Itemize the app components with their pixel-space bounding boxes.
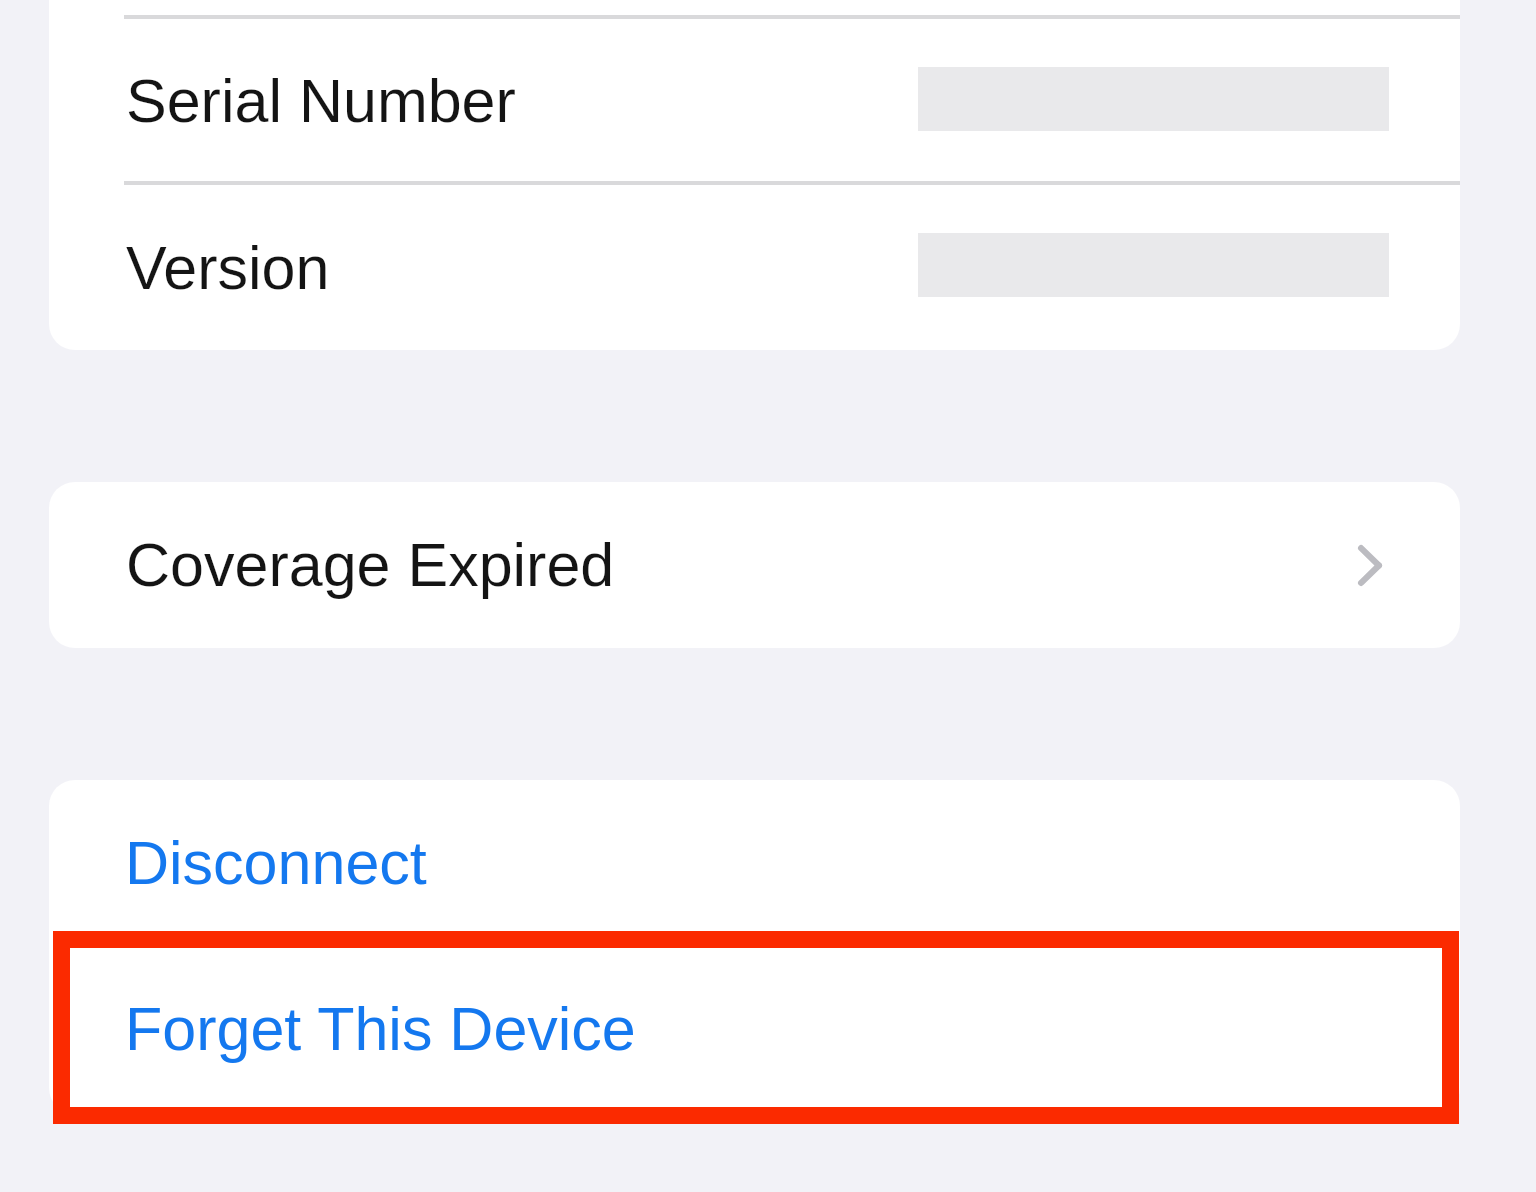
staticText: Disconnect bbox=[125, 829, 427, 897]
button[interactable]: Serial Number bbox=[49, 18, 1460, 184]
other: Coverage details bbox=[1358, 545, 1382, 586]
button[interactable]: Forget This Device bbox=[49, 946, 1460, 1112]
staticText: Version bbox=[126, 234, 330, 302]
staticText: Forget This Device bbox=[125, 995, 636, 1063]
staticText: Coverage Expired bbox=[126, 531, 615, 599]
button[interactable]: Coverage Expired bbox=[49, 482, 1460, 648]
button[interactable]: Disconnect bbox=[49, 780, 1460, 946]
button[interactable]: Version bbox=[49, 185, 1460, 350]
staticText: Serial Number bbox=[126, 67, 516, 135]
